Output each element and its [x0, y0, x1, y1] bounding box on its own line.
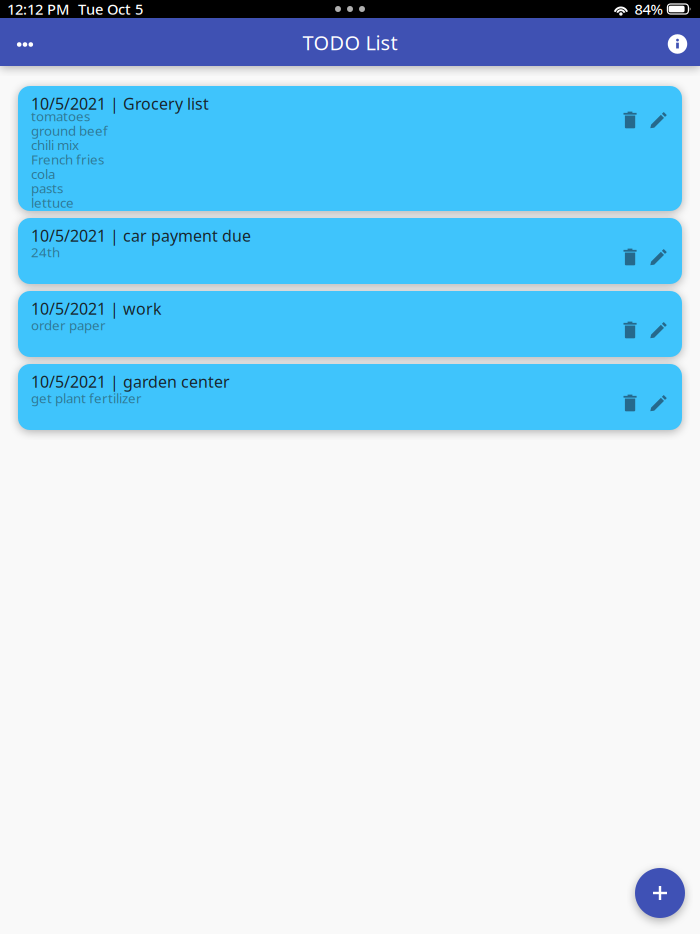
- button[interactable]: 10/5/2021 | garden center: [18, 364, 682, 430]
- button[interactable]: Add task: [635, 868, 685, 918]
- staticText: 84%: [634, 0, 662, 19]
- staticText: TODO List: [302, 29, 397, 56]
- staticText: get plant fertilizer: [31, 389, 142, 407]
- staticText: order paper: [31, 316, 106, 334]
- button[interactable]: 10/5/2021 | Grocery list: [18, 86, 682, 211]
- staticText: 10/5/2021 | garden center: [31, 371, 230, 392]
- button[interactable]: Delete: [621, 111, 639, 129]
- staticText: 10/5/2021 | Grocery list: [31, 93, 209, 114]
- button[interactable]: Edit: [649, 111, 667, 129]
- staticText: 10/5/2021 | work: [31, 298, 162, 319]
- button[interactable]: Edit: [649, 248, 667, 266]
- staticText: 12:12 PM: [7, 0, 69, 19]
- button[interactable]: 10/5/2021 | work: [18, 291, 682, 357]
- staticText: Tue Oct 5: [78, 0, 143, 19]
- button[interactable]: Edit: [649, 394, 667, 412]
- staticText: tomatoes ground beef chili mix French fr…: [31, 107, 108, 211]
- button[interactable]: Edit: [649, 321, 667, 339]
- staticText: 10/5/2021 | car payment due: [31, 225, 251, 246]
- button[interactable]: Delete: [621, 248, 639, 266]
- button[interactable]: Delete: [621, 321, 639, 339]
- button[interactable]: Delete: [621, 394, 639, 412]
- button[interactable]: 10/5/2021 | car payment due: [18, 218, 682, 284]
- button[interactable]: About: [655, 18, 700, 66]
- button[interactable]: Menu: [0, 18, 50, 66]
- staticText: 24th: [31, 243, 60, 261]
